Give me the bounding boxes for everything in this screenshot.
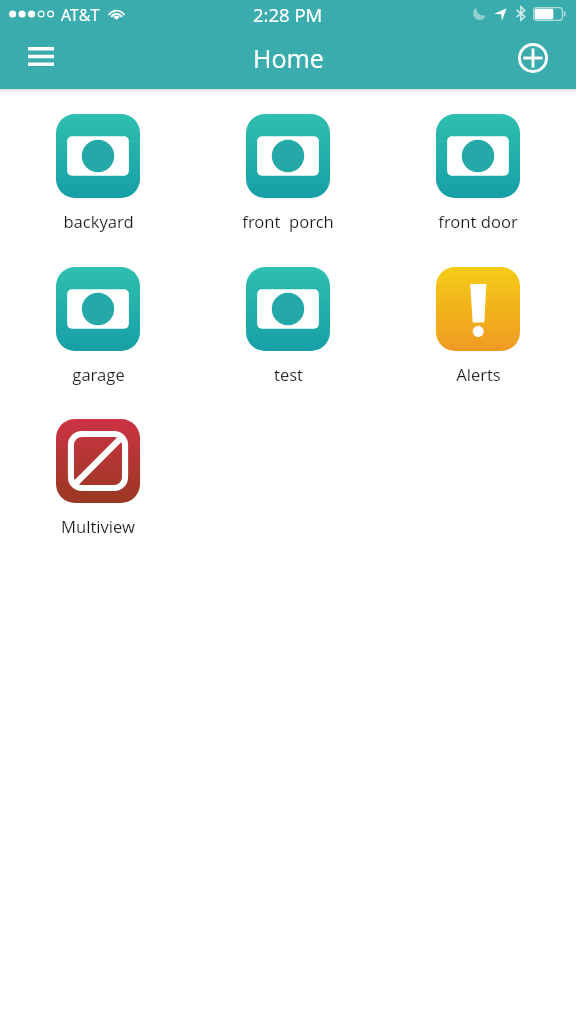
button[interactable]: Multiview xyxy=(28,419,168,538)
staticText: front porch xyxy=(242,210,334,233)
button[interactable]: backyard xyxy=(28,114,168,233)
staticText: front door xyxy=(438,210,518,233)
button[interactable]: Alerts xyxy=(408,267,548,386)
button[interactable]: test xyxy=(218,267,358,386)
staticText: Multiview xyxy=(61,515,135,538)
staticText: garage xyxy=(72,363,125,386)
button[interactable]: Open navigation menu xyxy=(7,31,74,81)
staticText: backyard xyxy=(63,210,134,233)
staticText: test xyxy=(274,363,303,386)
staticText: AT&T xyxy=(61,4,100,26)
staticText: Alerts xyxy=(456,363,501,386)
button[interactable]: front porch xyxy=(218,114,358,233)
button[interactable]: front door xyxy=(408,114,548,233)
staticText: 2:28 PM xyxy=(253,2,323,27)
button[interactable]: garage xyxy=(28,267,168,386)
button[interactable]: Add xyxy=(508,33,558,83)
staticText: Home xyxy=(253,41,324,75)
